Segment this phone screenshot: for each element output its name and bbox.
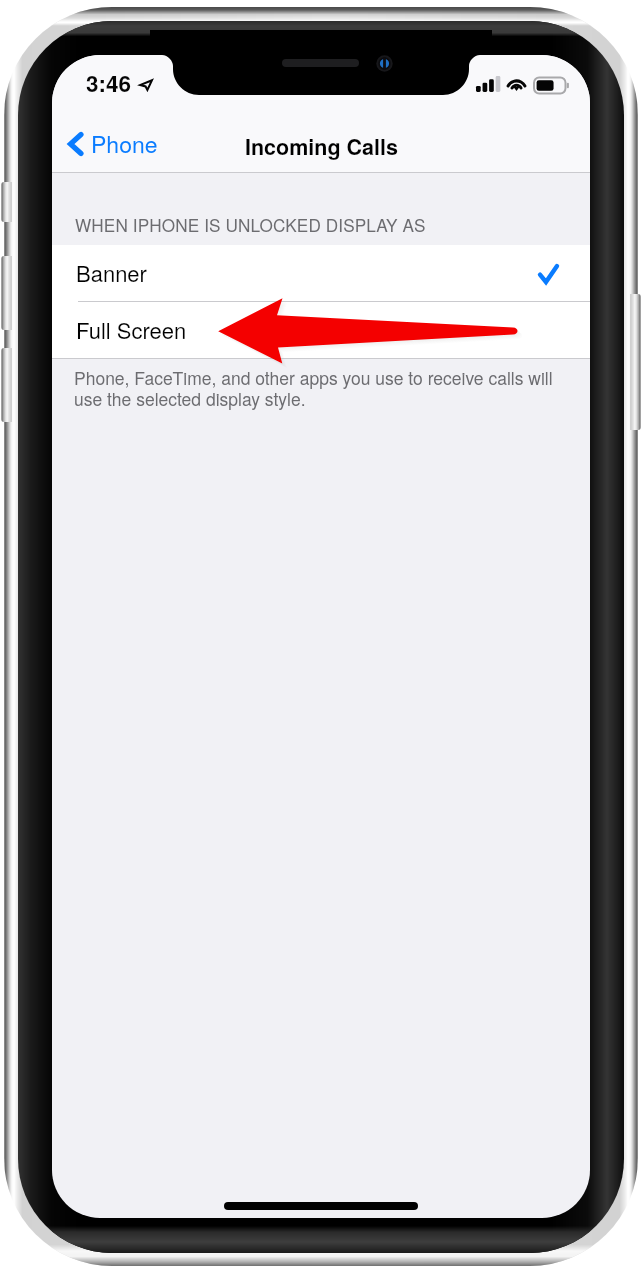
staticText: WHEN IPHONE IS UNLOCKED DISPLAY AS xyxy=(75,212,426,237)
button[interactable]: Banner xyxy=(52,245,590,301)
staticText: Full Screen xyxy=(76,314,187,346)
staticText: Phone xyxy=(91,127,158,160)
staticText: 3:46 xyxy=(86,67,132,99)
staticText: Phone, FaceTime, and other apps you use … xyxy=(74,365,566,411)
button[interactable]: Full Screen xyxy=(52,301,590,359)
staticText: Banner xyxy=(76,257,147,289)
staticText: Incoming Calls xyxy=(245,131,398,162)
other: Selected xyxy=(538,264,559,284)
button[interactable]: Phone xyxy=(58,121,172,168)
